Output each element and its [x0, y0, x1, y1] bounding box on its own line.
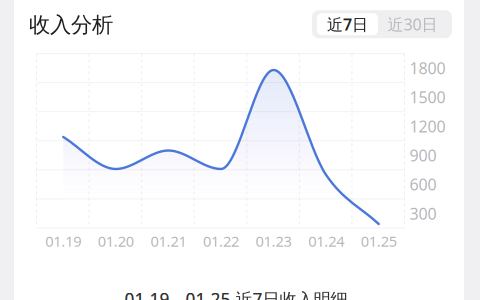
staticText: 1800 [409, 57, 445, 79]
staticText: 300 [409, 203, 436, 224]
staticText: 收入分析 [29, 12, 113, 38]
staticText: 01.19 [45, 231, 81, 251]
button[interactable]: 近30日 [378, 13, 447, 35]
staticText: 01.25 [361, 231, 397, 251]
staticText: 01.23 [256, 231, 292, 251]
staticText: 600 [409, 174, 436, 195]
staticText: 近7日 [327, 14, 368, 35]
button[interactable]: 近7日 [317, 13, 378, 35]
staticText: 01.24 [308, 231, 344, 251]
staticText: 01.19 - 01.25 近7日收入明细 [124, 287, 347, 300]
staticText: 01.22 [203, 231, 239, 251]
staticText: 01.20 [98, 231, 134, 251]
staticText: 900 [409, 145, 436, 166]
staticText: 近30日 [387, 14, 437, 35]
staticText: 1200 [409, 116, 445, 137]
staticText: 01.21 [150, 231, 186, 251]
staticText: 1500 [409, 86, 445, 108]
